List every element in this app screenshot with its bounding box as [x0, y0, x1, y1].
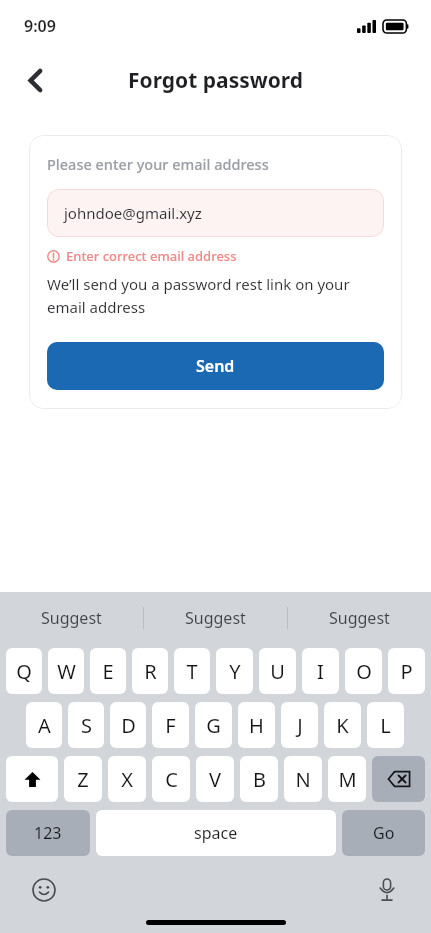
button[interactable]: E [90, 648, 126, 694]
button[interactable]: L [367, 702, 404, 748]
button[interactable]: Y [216, 648, 253, 694]
button[interactable]: P [388, 648, 425, 694]
button[interactable]: W [48, 648, 84, 694]
button[interactable]: Suggest [0, 592, 143, 644]
button[interactable]: X [108, 756, 146, 802]
button[interactable]: 123 [6, 810, 90, 856]
button[interactable]: space [96, 810, 336, 856]
staticText: johndoe@gmail.xyz [64, 203, 202, 223]
button[interactable]: H [238, 702, 275, 748]
staticText: V [209, 766, 221, 793]
staticText: E [102, 658, 114, 685]
staticText: R [144, 658, 157, 685]
staticText: Suggest [185, 607, 246, 629]
button[interactable]: R [132, 648, 168, 694]
staticText: H [249, 712, 264, 739]
staticText: K [336, 712, 349, 739]
button[interactable]: I [302, 648, 339, 694]
button[interactable]: F [152, 702, 189, 748]
staticText: 123 [34, 822, 62, 844]
button[interactable]: U [259, 648, 296, 694]
staticText: Go [373, 822, 395, 844]
button[interactable]: G [195, 702, 232, 748]
staticText: M [338, 766, 357, 793]
button[interactable]: S [68, 702, 104, 748]
staticText: We’ll send you a password rest link on y… [47, 274, 384, 317]
button[interactable]: M [328, 756, 366, 802]
staticText: X [121, 766, 133, 793]
button[interactable]: D [110, 702, 146, 748]
button[interactable]: Go [342, 810, 425, 856]
staticText: B [253, 766, 266, 793]
button[interactable]: Voice input [371, 874, 403, 906]
staticText: A [38, 712, 51, 739]
button[interactable]: J [281, 702, 318, 748]
button[interactable]: T [174, 648, 210, 694]
button[interactable]: N [284, 756, 322, 802]
staticText: Forgot password [128, 66, 304, 95]
button[interactable]: O [345, 648, 382, 694]
staticText: C [165, 766, 178, 793]
button[interactable]: Q [6, 648, 42, 694]
button[interactable]: johndoe@gmail.xyz [47, 189, 384, 237]
button[interactable]: Emoji [28, 874, 60, 906]
staticText: Send [196, 355, 235, 377]
button[interactable]: A [26, 702, 62, 748]
staticText: O [356, 658, 372, 685]
staticText: U [270, 658, 285, 685]
staticText: L [380, 712, 391, 739]
button[interactable]: C [152, 756, 190, 802]
button[interactable]: Backspace [372, 756, 425, 802]
button[interactable]: Shift [6, 756, 58, 802]
staticText: space [194, 822, 238, 844]
staticText: Q [16, 658, 32, 685]
staticText: G [206, 712, 221, 739]
button[interactable]: Z [64, 756, 102, 802]
staticText: T [186, 658, 198, 685]
staticText: Suggest [41, 607, 102, 629]
button[interactable]: Suggest [288, 592, 431, 644]
staticText: D [121, 712, 136, 739]
staticText: I [317, 658, 324, 685]
staticText: N [295, 766, 311, 793]
staticText: S [81, 712, 92, 739]
button[interactable]: Suggest [144, 592, 287, 644]
staticText: W [57, 658, 76, 685]
staticText: Enter correct email address [66, 247, 237, 265]
button[interactable]: V [196, 756, 234, 802]
staticText: P [400, 658, 413, 685]
button[interactable]: B [240, 756, 278, 802]
staticText: F [165, 712, 176, 739]
staticText: Z [77, 766, 89, 793]
staticText: J [297, 712, 303, 739]
staticText: Please enter your email address [47, 154, 269, 174]
staticText: Suggest [329, 607, 390, 629]
button[interactable]: Send [47, 342, 384, 390]
button[interactable]: Back [14, 59, 56, 101]
button[interactable]: K [324, 702, 361, 748]
staticText: Y [229, 658, 241, 685]
staticText: 9:09 [24, 15, 56, 37]
